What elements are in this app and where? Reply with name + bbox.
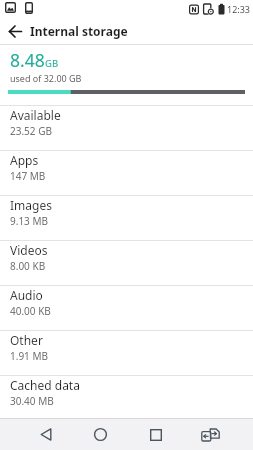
staticText: Other: [10, 332, 43, 348]
button[interactable]: Images: [0, 196, 253, 240]
staticText: Audio: [10, 287, 43, 303]
staticText: Apps: [10, 152, 39, 168]
staticText: 23.52 GB: [10, 124, 52, 138]
button[interactable]: Apps: [0, 151, 253, 195]
staticText: Cached data: [10, 377, 80, 393]
button[interactable]: [19, 419, 73, 450]
staticText: Available: [10, 107, 61, 123]
button[interactable]: [0, 18, 30, 44]
button[interactable]: [183, 419, 238, 450]
staticText: GB: [45, 57, 59, 70]
staticText: used of 32.00 GB: [10, 72, 82, 84]
button[interactable]: Videos: [0, 241, 253, 285]
staticText: Videos: [10, 242, 48, 258]
staticText: 8.00 KB: [10, 259, 46, 273]
staticText: 1.91 MB: [10, 349, 49, 363]
staticText: 9.13 MB: [10, 214, 49, 228]
button[interactable]: Other: [0, 331, 253, 375]
button[interactable]: [73, 419, 128, 450]
staticText: 8.48: [10, 48, 45, 72]
staticText: 12:33: [227, 3, 251, 15]
staticText: 40.00 KB: [10, 304, 51, 318]
button[interactable]: Available: [0, 106, 253, 150]
staticText: 30.40 MB: [10, 394, 54, 408]
staticText: Internal storage: [30, 23, 128, 39]
button[interactable]: [128, 419, 183, 450]
button[interactable]: Audio: [0, 286, 253, 330]
staticText: 147 MB: [10, 169, 46, 183]
staticText: Images: [10, 197, 52, 213]
button[interactable]: Cached data: [0, 376, 253, 418]
